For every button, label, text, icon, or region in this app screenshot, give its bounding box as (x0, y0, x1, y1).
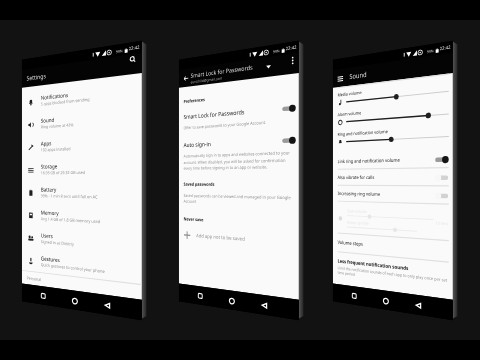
button[interactable] (435, 154, 449, 165)
staticText: Ring and notification volume (338, 128, 388, 137)
button[interactable]: Gestures (22, 248, 142, 285)
staticText: Signed in as Dmitriy (41, 239, 74, 248)
staticText: Avg 1.4 GB of 1.8 GB memory used (41, 216, 101, 225)
button[interactable]: Back (410, 295, 427, 316)
staticText: 22:42 (286, 44, 297, 52)
staticText: Increasing ring volume (338, 190, 435, 199)
staticText: Quick gestures to control your phone (41, 262, 105, 275)
button[interactable]: Storage (22, 155, 142, 181)
staticText: Less frequent notification sounds (338, 258, 409, 272)
staticText: 22:42 (440, 44, 451, 52)
staticText: Add app not to be saved (196, 232, 246, 243)
button[interactable]: Back (99, 295, 116, 316)
staticText: Gestures (41, 254, 61, 263)
staticText: Saved passwords can be viewed and manage… (184, 193, 296, 208)
staticText: 99% (116, 48, 124, 54)
staticText: Also vibrate for calls (338, 174, 435, 181)
button[interactable]: Memory (22, 203, 142, 233)
staticText: Settings (27, 71, 46, 82)
button[interactable]: More options (288, 55, 297, 66)
button[interactable]: Link ring and notification volume (338, 150, 449, 170)
button[interactable]: Sound (22, 103, 142, 136)
button[interactable]: Back (256, 295, 273, 316)
staticText: Saved passwords (184, 181, 215, 187)
staticText: 10 secs (436, 220, 449, 226)
button[interactable]: Back (180, 71, 191, 85)
staticText: eurschild@gmail.com (191, 75, 223, 84)
staticText: Automatically sign in to apps and websit… (184, 150, 296, 171)
button[interactable]: Recents (193, 286, 208, 306)
staticText: Smart Lock for Passwords (184, 105, 282, 121)
button[interactable]: Battery (22, 181, 142, 207)
staticText: Media volume (338, 89, 362, 97)
staticText: Personal (27, 275, 42, 282)
button[interactable] (435, 172, 449, 183)
staticText: Offer to save passwords to your Google A… (184, 120, 266, 131)
staticText: Link ring and notification volume (338, 156, 435, 165)
button[interactable] (435, 190, 449, 201)
staticText: Start volume (347, 208, 367, 214)
button[interactable]: Home (378, 290, 393, 311)
staticText: Ramp up time (347, 220, 369, 226)
button[interactable]: Menu (335, 72, 345, 85)
staticText: Users (41, 232, 53, 239)
staticText: Limit the notification sounds of each ap… (338, 265, 449, 288)
staticText: Auto sign-in (184, 137, 282, 149)
button[interactable]: Users (22, 226, 142, 259)
staticText: Sound (349, 70, 367, 82)
button[interactable]: Home (67, 290, 82, 311)
button[interactable]: Volume steps (338, 239, 363, 248)
button[interactable]: Search (128, 53, 138, 65)
staticText: 99% (427, 48, 435, 54)
button[interactable]: Apps (22, 129, 142, 159)
staticText: Ring volume at 43% (41, 122, 73, 130)
button[interactable]: Add app not to be saved (184, 231, 296, 248)
staticText: 5 apps blocked from sending (41, 97, 90, 107)
staticText: Never save (184, 216, 203, 222)
staticText: Apps (41, 139, 51, 147)
staticText: 102 apps installed (41, 146, 71, 153)
button[interactable]: Home (224, 290, 239, 311)
staticText: 99% - 1 min 8 secs until full on AC (41, 193, 98, 200)
staticText: 99% (273, 48, 281, 54)
staticText: Notifications (41, 91, 68, 101)
staticText: Battery (41, 186, 56, 193)
staticText: Storage (41, 162, 58, 169)
staticText: 22:42 (129, 44, 140, 52)
button[interactable] (282, 102, 296, 114)
button[interactable] (282, 135, 296, 146)
staticText: Smart Lock for Passwords (191, 63, 253, 80)
staticText: Memory (41, 209, 59, 216)
staticText: Sound (41, 116, 55, 124)
button[interactable]: Increasing ring volume (338, 186, 449, 205)
staticText: 16.93 GB of 29.32 GB used (41, 170, 85, 176)
button[interactable]: Recents (36, 286, 51, 306)
button[interactable]: Recents (347, 286, 362, 306)
staticText: Preferences (184, 96, 205, 104)
button[interactable]: Also vibrate for calls (338, 168, 449, 186)
staticText: Alarm volume (338, 109, 362, 117)
button[interactable]: Notifications (22, 77, 142, 114)
